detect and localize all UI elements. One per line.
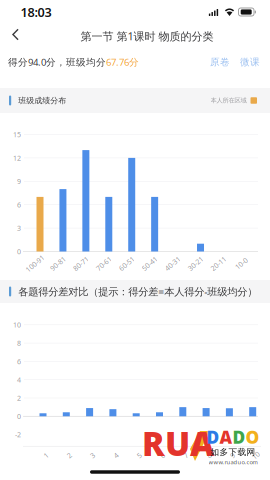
staticText: 10	[13, 320, 21, 330]
staticText: 6	[160, 450, 164, 460]
button[interactable]: 微课	[235, 51, 270, 73]
staticText: 本人所在区域	[210, 97, 246, 104]
staticText: 10	[252, 450, 260, 460]
staticText: 18:03	[20, 3, 51, 21]
staticText: 15	[13, 130, 21, 139]
staticText: 7	[184, 450, 188, 460]
staticText: 第一节 第1课时 物质的分类	[80, 28, 213, 44]
staticText: 4	[17, 375, 21, 384]
staticText: 3	[17, 223, 21, 233]
staticText: 6	[17, 200, 21, 209]
staticText: 30-21	[186, 259, 204, 268]
staticText: 12	[13, 153, 21, 163]
staticText: 9	[230, 450, 234, 460]
staticText: O	[245, 425, 259, 449]
staticText: 80-71	[72, 259, 90, 268]
staticText: A	[219, 425, 232, 449]
staticText: 1	[44, 450, 48, 460]
staticText: 得分94.0分，班级均分	[8, 55, 106, 69]
staticText: 90-81	[49, 259, 67, 268]
staticText: 60-51	[118, 259, 136, 268]
staticText: D	[232, 425, 245, 449]
staticText: 2	[17, 393, 21, 403]
staticText: 10-0	[234, 259, 248, 268]
staticText: 5	[137, 450, 141, 460]
button[interactable]: 原卷	[205, 51, 235, 73]
staticText: 50-41	[141, 259, 159, 268]
staticText: 0	[17, 247, 21, 256]
staticText: 4	[114, 450, 118, 460]
staticText: 6	[17, 357, 21, 366]
staticText: 0	[17, 411, 21, 421]
staticText: 如多下载网	[210, 446, 255, 457]
staticText: 8	[207, 450, 211, 460]
staticText: www.ruaduo.com	[208, 458, 257, 466]
staticText: 3	[91, 450, 95, 460]
staticText: RUA	[142, 420, 214, 466]
staticText: 9	[17, 176, 21, 186]
button[interactable]: Back	[3, 21, 28, 47]
staticText: 各题得分差对比（提示：得分差=本人得分-班级均分）	[18, 284, 257, 298]
staticText: 班级成绩分布	[18, 95, 66, 106]
staticText: D	[206, 425, 219, 449]
staticText: 8	[17, 338, 21, 348]
staticText: 100-91	[24, 259, 46, 268]
staticText: -2	[15, 430, 21, 439]
staticText: 40-31	[164, 259, 182, 268]
staticText: 67.76分	[106, 55, 139, 69]
staticText: 原卷	[210, 56, 230, 68]
staticText: 2	[67, 450, 71, 460]
staticText: 微课	[240, 56, 260, 68]
staticText: 20-11	[209, 259, 227, 268]
staticText: 70-61	[95, 259, 113, 268]
